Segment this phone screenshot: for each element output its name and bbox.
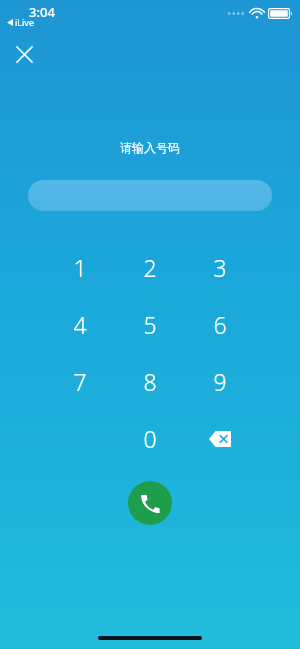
button[interactable]: 0 bbox=[115, 410, 185, 467]
staticText: 6 bbox=[213, 309, 227, 340]
button[interactable]: 6 bbox=[185, 296, 255, 353]
button[interactable]: Close bbox=[6, 36, 42, 72]
button[interactable] bbox=[28, 180, 272, 211]
button[interactable]: 7 bbox=[45, 353, 115, 410]
button[interactable]: Call bbox=[128, 481, 172, 525]
staticText: iLive bbox=[15, 16, 35, 28]
staticText: 请输入号码 bbox=[0, 140, 300, 155]
button[interactable]: 4 bbox=[45, 296, 115, 353]
button[interactable]: 2 bbox=[115, 239, 185, 296]
staticText: 3 bbox=[213, 252, 227, 283]
staticText: 5 bbox=[143, 309, 157, 340]
staticText: 4 bbox=[73, 309, 87, 340]
staticText: 2 bbox=[143, 252, 157, 283]
staticText: 3:04 bbox=[29, 3, 55, 21]
button[interactable]: Backspace bbox=[185, 410, 255, 467]
button[interactable]: 8 bbox=[115, 353, 185, 410]
staticText: 7 bbox=[73, 366, 87, 397]
button[interactable]: 1 bbox=[45, 239, 115, 296]
button[interactable]: 3 bbox=[185, 239, 255, 296]
staticText: 0 bbox=[143, 423, 157, 454]
staticText: 1 bbox=[73, 252, 87, 283]
button[interactable]: 5 bbox=[115, 296, 185, 353]
button[interactable]: 9 bbox=[185, 353, 255, 410]
staticText: 9 bbox=[213, 366, 227, 397]
staticText: 8 bbox=[143, 366, 157, 397]
